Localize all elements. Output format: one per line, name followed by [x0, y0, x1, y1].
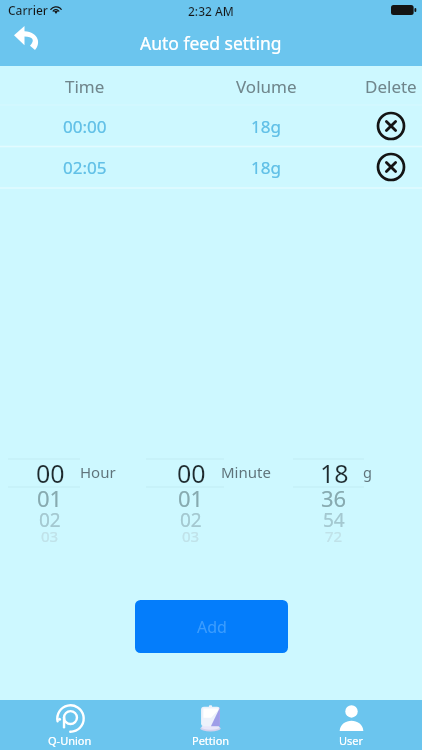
button[interactable]: [8, 455, 80, 550]
button[interactable]: 02:05: [0, 146, 422, 188]
staticText: 18g: [251, 115, 281, 138]
staticText: 18g: [251, 156, 281, 179]
staticText: Pettion: [192, 733, 230, 748]
staticText: 00: [177, 456, 206, 490]
staticText: g: [363, 462, 372, 482]
staticText: 01: [178, 483, 204, 513]
staticText: Hour: [80, 462, 116, 482]
button[interactable]: Delete entry: [374, 150, 408, 184]
button[interactable]: [146, 455, 224, 550]
staticText: Q-Union: [48, 733, 92, 748]
staticText: 00: [36, 456, 65, 490]
button[interactable]: Q-Union: [0, 700, 140, 750]
button[interactable]: Add: [135, 600, 288, 653]
staticText: User: [339, 733, 364, 748]
staticText: Add: [197, 616, 227, 638]
button[interactable]: Pettion: [140, 700, 281, 750]
button[interactable]: [293, 455, 364, 550]
button[interactable]: User: [281, 700, 422, 750]
button[interactable]: Back: [2, 16, 48, 62]
staticText: 54: [323, 507, 345, 533]
staticText: 02:05: [63, 156, 107, 179]
button[interactable]: 00:00: [0, 105, 422, 146]
staticText: 01: [37, 483, 63, 513]
staticText: Time: [65, 75, 105, 98]
staticText: 36: [321, 483, 347, 513]
staticText: 02: [39, 507, 61, 533]
staticText: 03: [182, 526, 200, 546]
staticText: Volume: [236, 75, 297, 98]
staticText: 00:00: [63, 115, 107, 138]
staticText: Carrier: [8, 2, 48, 18]
staticText: 03: [41, 526, 59, 546]
staticText: 18: [320, 456, 349, 490]
staticText: 02: [180, 507, 202, 533]
staticText: Minute: [221, 462, 271, 482]
staticText: Auto feed setting: [140, 31, 282, 55]
staticText: 72: [325, 526, 343, 546]
button[interactable]: Delete entry: [374, 109, 408, 143]
staticText: Delete: [365, 75, 417, 98]
staticText: 2:32 AM: [188, 3, 234, 19]
